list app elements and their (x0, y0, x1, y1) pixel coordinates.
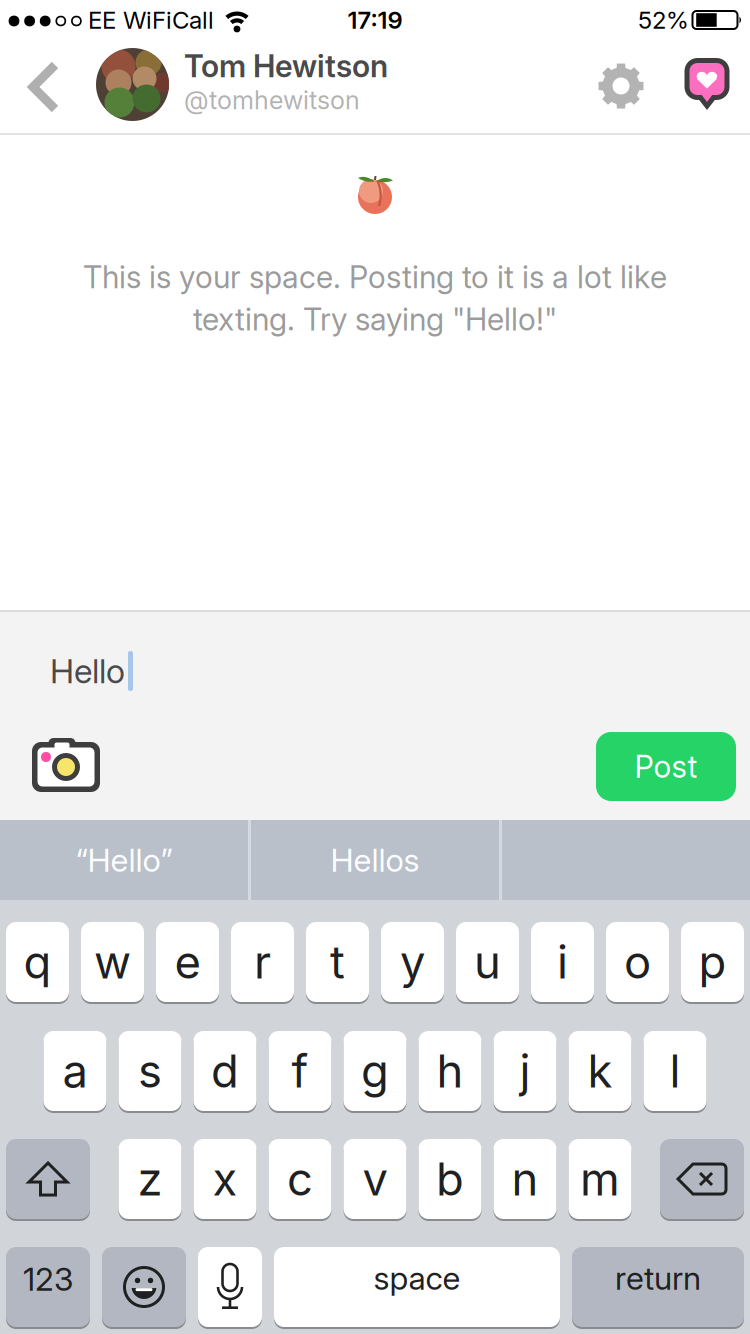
staticText: c (287, 1152, 313, 1206)
staticText: u (474, 935, 501, 989)
staticText: Tom Hewitson (184, 48, 388, 84)
button[interactable]: h (418, 1030, 481, 1112)
button[interactable]: m (568, 1138, 631, 1220)
staticText: k (587, 1044, 612, 1098)
button[interactable]: Back (18, 50, 74, 124)
button[interactable]: 123 (6, 1246, 90, 1328)
button[interactable]: d (193, 1030, 256, 1112)
button[interactable]: x (193, 1138, 256, 1220)
button[interactable]: Delete (660, 1138, 744, 1220)
button[interactable]: j (493, 1030, 556, 1112)
button[interactable]: Emoji (102, 1246, 186, 1328)
button[interactable]: s (118, 1030, 181, 1112)
button[interactable]: Friend activity (684, 60, 730, 114)
staticText: “Hello” (75, 841, 172, 879)
button[interactable]: e (156, 921, 219, 1003)
staticText: v (362, 1152, 387, 1206)
button[interactable]: n (493, 1138, 556, 1220)
button[interactable]: g (343, 1030, 406, 1112)
staticText: w (94, 935, 131, 989)
staticText: 123 (23, 1260, 73, 1298)
button[interactable]: o (606, 921, 669, 1003)
button[interactable]: q (6, 921, 69, 1003)
staticText: Hello (50, 651, 125, 691)
staticText: o (624, 935, 651, 989)
button[interactable]: c (268, 1138, 331, 1220)
staticText: texting. Try saying "Hello!" (193, 301, 557, 337)
staticText: m (580, 1152, 620, 1206)
button[interactable]: a (43, 1030, 106, 1112)
staticText: n (511, 1152, 538, 1206)
button[interactable]: p (681, 921, 744, 1003)
button[interactable]: Hellos (251, 820, 499, 900)
button[interactable]: Post (596, 732, 736, 801)
staticText: Post (634, 748, 697, 785)
button[interactable]: z (118, 1138, 181, 1220)
button[interactable]: f (268, 1030, 331, 1112)
staticText: l (669, 1044, 680, 1098)
button[interactable]: Shift (6, 1138, 90, 1220)
staticText: f (291, 1044, 308, 1098)
button[interactable]: b (418, 1138, 481, 1220)
staticText: p (698, 935, 726, 989)
staticText: z (137, 1152, 162, 1206)
button[interactable]: “Hello” (0, 820, 248, 900)
staticText: 17:19 (347, 6, 402, 34)
staticText: a (62, 1044, 87, 1098)
staticText: y (400, 935, 425, 989)
staticText: d (211, 1044, 239, 1098)
staticText: space (373, 1259, 460, 1297)
staticText: q (23, 935, 51, 989)
staticText: j (519, 1044, 530, 1098)
staticText: return (615, 1259, 701, 1297)
staticText: b (436, 1152, 464, 1206)
staticText: i (557, 935, 568, 989)
staticText: This is your space. Posting to it is a l… (83, 259, 667, 295)
button[interactable]: space (274, 1246, 560, 1328)
button[interactable]: y (381, 921, 444, 1003)
staticText: x (212, 1152, 237, 1206)
button[interactable]: Profile photo (96, 48, 169, 121)
button[interactable]: r (231, 921, 294, 1003)
button[interactable]: return (572, 1246, 744, 1328)
button[interactable]: Settings (596, 61, 646, 111)
staticText: g (361, 1044, 389, 1098)
staticText: e (174, 935, 200, 989)
staticText: Hellos (330, 841, 419, 879)
staticText: 52% (638, 6, 689, 34)
button[interactable]: t (306, 921, 369, 1003)
staticText: EE WiFiCall (88, 6, 214, 34)
button[interactable]: v (343, 1138, 406, 1220)
staticText: t (330, 935, 345, 989)
button[interactable]: Dictate (198, 1246, 262, 1328)
staticText: @tomhewitson (184, 85, 360, 115)
button[interactable]: i (531, 921, 594, 1003)
button[interactable]: l (643, 1030, 706, 1112)
staticText: h (436, 1044, 463, 1098)
button[interactable]: Add photo (32, 736, 100, 792)
staticText: r (254, 935, 271, 989)
button[interactable]: w (81, 921, 144, 1003)
button[interactable]: u (456, 921, 519, 1003)
staticText: s (138, 1044, 162, 1098)
button[interactable]: k (568, 1030, 631, 1112)
